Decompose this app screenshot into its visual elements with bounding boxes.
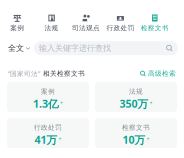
staticText: 检察文书 xyxy=(141,24,169,32)
staticText: 相关检察文书 xyxy=(43,69,85,78)
button[interactable]: 检察文书 xyxy=(138,14,172,32)
staticText: “国家司法” xyxy=(8,69,40,78)
button[interactable]: 案例 xyxy=(0,14,34,32)
staticText: + xyxy=(146,136,149,143)
staticText: 行政处罚 xyxy=(106,24,134,32)
staticText: 案例 xyxy=(10,24,24,32)
staticText: 350万 xyxy=(119,97,148,111)
staticText: + xyxy=(149,100,152,107)
staticText: + xyxy=(58,136,61,143)
button[interactable]: 法规 xyxy=(34,14,69,32)
staticText: 法规 xyxy=(45,24,59,32)
staticText: 司法观点 xyxy=(72,24,100,32)
staticText: 1.3亿 xyxy=(33,97,59,111)
button[interactable]: 司法观点 xyxy=(69,14,103,32)
staticText: + xyxy=(60,100,63,107)
button[interactable]: 行政处罚 xyxy=(7,118,89,148)
staticText: 41万 xyxy=(34,133,57,147)
staticText: 检察文书 xyxy=(122,123,150,132)
button[interactable]: 行政处罚 xyxy=(103,14,138,32)
staticText: 全文 xyxy=(8,43,24,53)
staticText: 法规 xyxy=(129,87,143,96)
staticText: 高级检索 xyxy=(148,69,176,78)
button[interactable]: 检察文书 xyxy=(95,118,177,148)
staticText: 10万 xyxy=(122,133,145,147)
button[interactable]: 全文 xyxy=(8,43,30,53)
staticText: 输入关键字进行查找 xyxy=(39,43,111,53)
button[interactable]: 案例 xyxy=(7,82,89,112)
staticText: 案例 xyxy=(41,87,55,96)
button[interactable]: 法规 xyxy=(95,82,177,112)
button[interactable]: 高级检索 xyxy=(140,69,176,78)
staticText: 行政处罚 xyxy=(34,123,62,132)
